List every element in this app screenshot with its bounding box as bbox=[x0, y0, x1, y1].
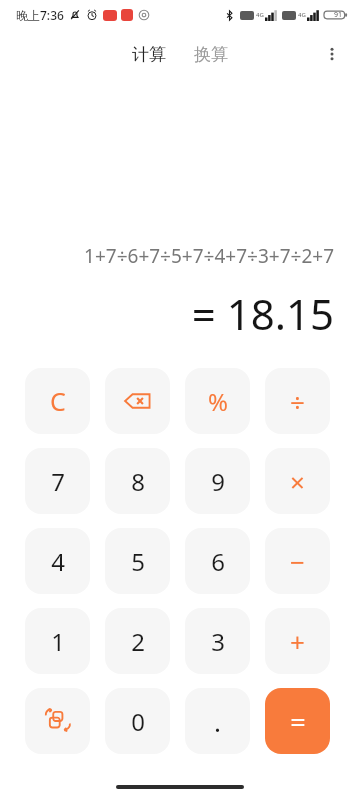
button[interactable]: . bbox=[185, 688, 250, 754]
staticText: 3 bbox=[211, 625, 225, 658]
staticText: C bbox=[50, 384, 66, 418]
button[interactable]: 9 bbox=[185, 448, 250, 514]
button[interactable]: 1 bbox=[25, 608, 90, 674]
staticText: % bbox=[208, 385, 228, 418]
button[interactable]: 3 bbox=[185, 608, 250, 674]
button[interactable]: 计算 bbox=[126, 40, 172, 69]
staticText: 计算 bbox=[132, 44, 166, 65]
staticText: 8 bbox=[131, 465, 145, 498]
button[interactable]: % bbox=[185, 368, 250, 434]
button[interactable]: 换算 bbox=[188, 40, 234, 69]
button[interactable]: 4 bbox=[25, 528, 90, 594]
staticText: × bbox=[290, 464, 305, 499]
button[interactable]: C bbox=[25, 368, 90, 434]
button[interactable]: 7 bbox=[25, 448, 90, 514]
button[interactable]: 5 bbox=[105, 528, 170, 594]
staticText: 91 bbox=[334, 10, 343, 20]
button[interactable]: × bbox=[265, 448, 330, 514]
staticText: 7 bbox=[51, 465, 65, 498]
staticText: 5 bbox=[131, 545, 145, 578]
staticText: + bbox=[290, 624, 305, 659]
button[interactable]: 6 bbox=[185, 528, 250, 594]
button[interactable]: − bbox=[265, 528, 330, 594]
staticText: 2 bbox=[131, 625, 145, 658]
staticText: 换算 bbox=[194, 44, 228, 65]
button[interactable]: 2 bbox=[105, 608, 170, 674]
button[interactable]: 0 bbox=[105, 688, 170, 754]
button[interactable]: 8 bbox=[105, 448, 170, 514]
staticText: 9 bbox=[211, 465, 225, 498]
button[interactable]: = bbox=[265, 688, 330, 754]
staticText: 1+7÷6+7÷5+7÷4+7÷3+7÷2+7 bbox=[26, 243, 334, 269]
staticText: = 18.15 bbox=[26, 285, 334, 342]
button[interactable]: + bbox=[265, 608, 330, 674]
staticText: 晚上7:36 bbox=[16, 7, 64, 23]
staticText: = bbox=[290, 703, 306, 740]
button[interactable]: Backspace bbox=[105, 368, 170, 434]
staticText: 0 bbox=[131, 705, 145, 738]
staticText: 4G bbox=[298, 11, 306, 19]
staticText: 4 bbox=[51, 545, 65, 578]
staticText: − bbox=[290, 544, 305, 579]
staticText: . bbox=[214, 704, 221, 739]
staticText: 4G bbox=[256, 11, 264, 19]
button[interactable]: ÷ bbox=[265, 368, 330, 434]
staticText: 6 bbox=[211, 545, 225, 578]
button[interactable]: More options bbox=[312, 34, 352, 74]
button[interactable]: Unit conversion bbox=[25, 688, 90, 754]
staticText: 1 bbox=[51, 625, 65, 658]
staticText: ÷ bbox=[290, 384, 305, 419]
